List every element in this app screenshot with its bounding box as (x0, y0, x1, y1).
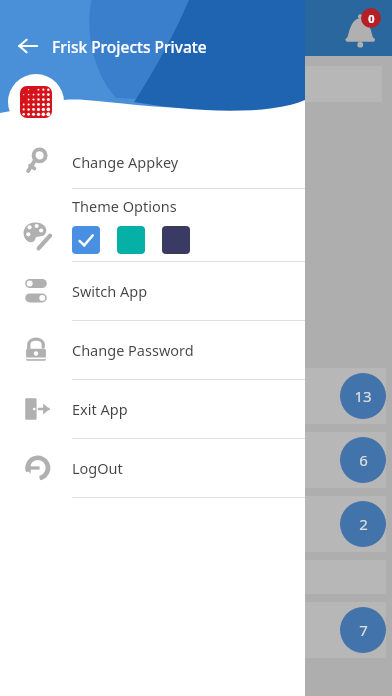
staticText: 13 (354, 386, 372, 406)
staticText: 7 (359, 620, 368, 640)
button[interactable]: Teal theme (117, 226, 145, 254)
staticText: Switch App (72, 281, 148, 301)
staticText: 0 (368, 11, 375, 26)
staticText: Theme Options (72, 196, 177, 216)
button[interactable]: Exit App (0, 380, 305, 438)
staticText: Frisk Projects Private Ltd,MANJEET ... (52, 36, 305, 57)
staticText: Change Password (72, 340, 194, 360)
button[interactable]: LogOut (0, 439, 305, 497)
button[interactable]: Back (4, 22, 52, 70)
button[interactable]: Change Password (0, 321, 305, 379)
button[interactable]: Change Appkey (0, 136, 305, 188)
staticText: 6 (359, 450, 368, 470)
button[interactable]: Switch App (0, 262, 305, 320)
button[interactable]: Blue theme (72, 226, 100, 254)
staticText: LogOut (72, 458, 123, 478)
button[interactable]: Notifications (340, 6, 384, 50)
staticText: Exit App (72, 399, 128, 419)
button[interactable]: Navy theme (162, 226, 190, 254)
staticText: Change Appkey (72, 152, 179, 172)
staticText: 2 (359, 514, 368, 534)
